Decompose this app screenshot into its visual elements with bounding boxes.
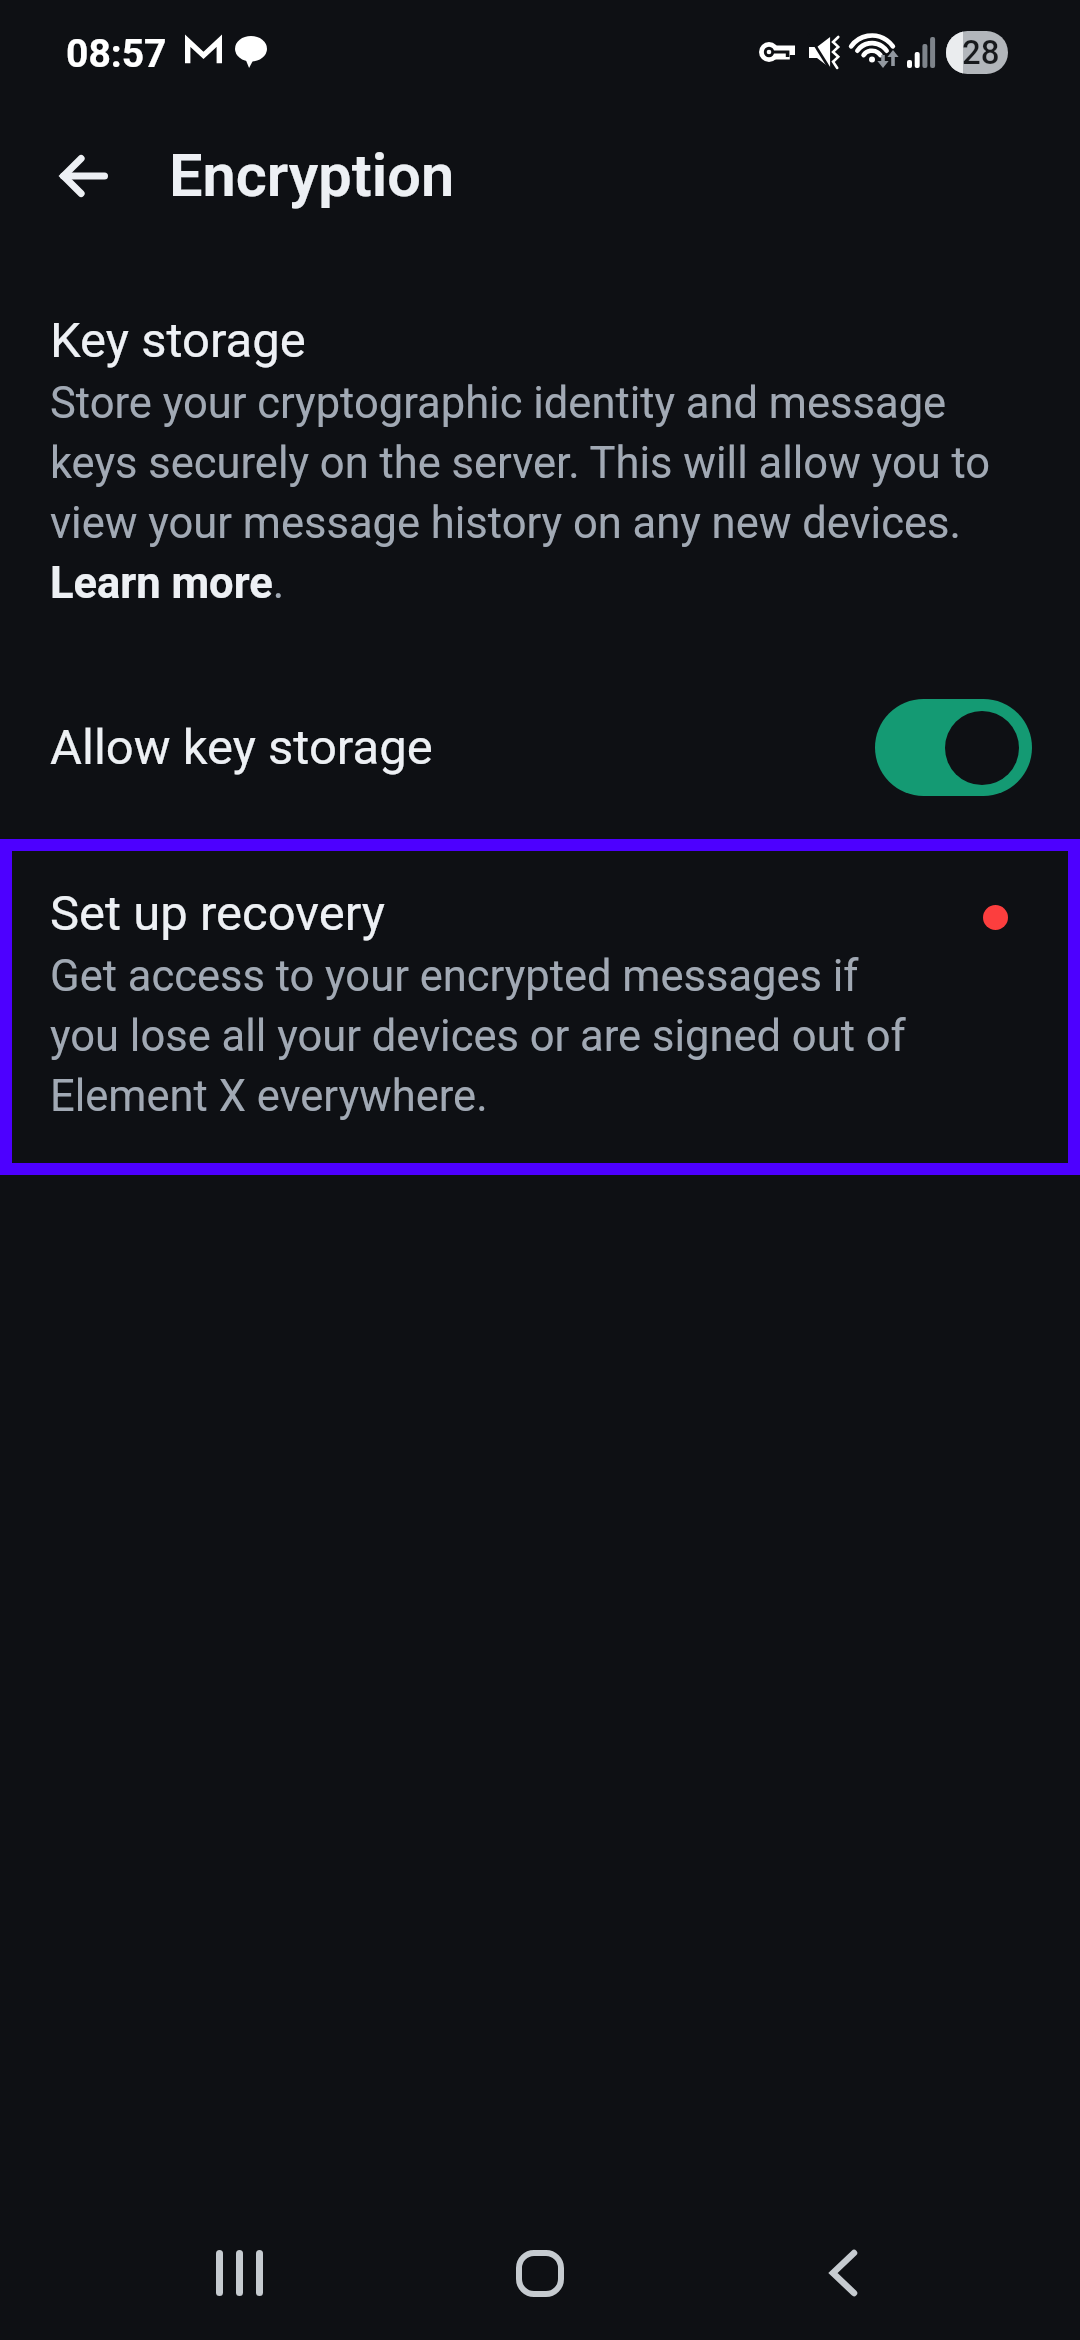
staticText: 08:57 — [66, 31, 167, 77]
button[interactable]: Back — [38, 130, 130, 222]
button[interactable]: Recent apps — [174, 2208, 304, 2338]
staticText: 28 — [962, 33, 1000, 72]
staticText: Encryption — [169, 141, 455, 211]
button[interactable]: Home — [475, 2208, 605, 2338]
staticText: Allow key storage — [50, 717, 875, 777]
staticText: Key storage — [50, 310, 306, 370]
staticText: Set up recovery — [50, 883, 385, 943]
button[interactable]: Set up recovery — [12, 851, 1068, 1163]
button[interactable]: Allow key storage — [0, 676, 1080, 818]
button[interactable]: Allow key storage — [875, 699, 1032, 796]
button[interactable]: Back — [778, 2208, 908, 2338]
button[interactable]: Store your cryptographic identity and me… — [50, 370, 1030, 610]
staticText: Get access to your encrypted messages if… — [50, 943, 906, 1123]
